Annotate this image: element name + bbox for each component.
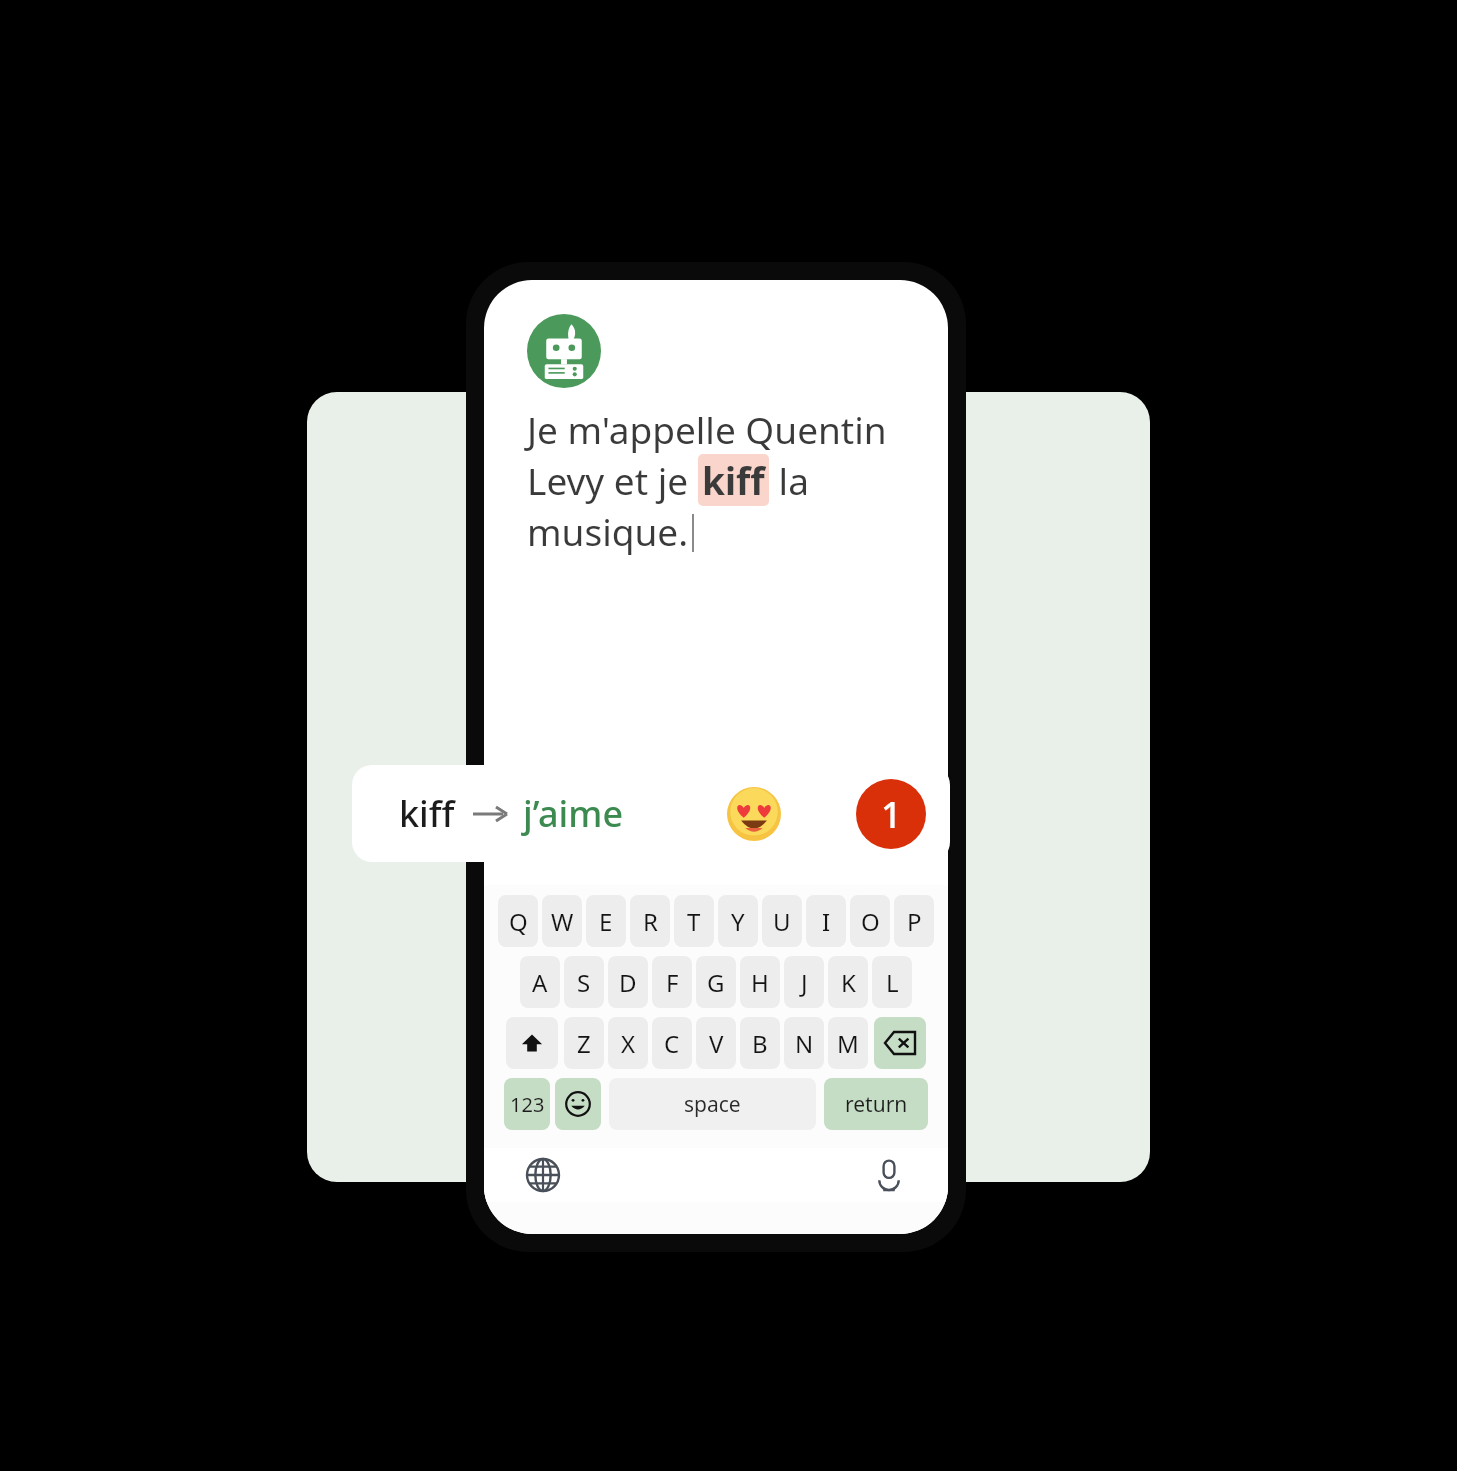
staticText: G bbox=[707, 966, 725, 999]
button[interactable]: M bbox=[828, 1017, 868, 1069]
button[interactable]: B bbox=[740, 1017, 780, 1069]
staticText: X bbox=[621, 1027, 636, 1060]
staticText: O bbox=[861, 905, 880, 938]
staticText: Z bbox=[577, 1027, 591, 1060]
button[interactable]: C bbox=[652, 1017, 692, 1069]
staticText: C bbox=[664, 1027, 680, 1060]
staticText: musique. bbox=[527, 506, 689, 556]
button[interactable]: I bbox=[806, 895, 846, 947]
staticText: W bbox=[551, 905, 574, 938]
button[interactable]: N bbox=[784, 1017, 824, 1069]
button[interactable]: L bbox=[872, 956, 912, 1008]
button[interactable]: Z bbox=[564, 1017, 604, 1069]
staticText: T bbox=[687, 905, 701, 938]
staticText: la bbox=[769, 455, 809, 505]
staticText: E bbox=[599, 905, 613, 938]
button[interactable]: U bbox=[762, 895, 802, 947]
button[interactable]: Q bbox=[498, 895, 538, 947]
button[interactable]: Backspace bbox=[874, 1017, 926, 1069]
button[interactable]: F bbox=[652, 956, 692, 1008]
staticText: U bbox=[773, 905, 791, 938]
staticText: L bbox=[886, 966, 899, 999]
staticText: I bbox=[822, 905, 831, 938]
button[interactable]: Change keyboard language bbox=[520, 1152, 566, 1198]
button[interactable]: G bbox=[696, 956, 736, 1008]
staticText: 123 bbox=[510, 1091, 545, 1118]
button[interactable]: 1 notification bbox=[832, 765, 950, 862]
button[interactable]: D bbox=[608, 956, 648, 1008]
staticText: P bbox=[907, 905, 922, 938]
staticText: R bbox=[643, 905, 658, 938]
button[interactable]: Emoji bbox=[555, 1078, 601, 1130]
staticText: S bbox=[577, 966, 591, 999]
button[interactable]: T bbox=[674, 895, 714, 947]
staticText: K bbox=[841, 966, 856, 999]
button[interactable]: E bbox=[586, 895, 626, 947]
button[interactable]: X bbox=[608, 1017, 648, 1069]
staticText: H bbox=[751, 966, 769, 999]
button[interactable]: R bbox=[630, 895, 670, 947]
button[interactable]: V bbox=[696, 1017, 736, 1069]
button[interactable]: W bbox=[542, 895, 582, 947]
staticText: Q bbox=[509, 905, 528, 938]
staticText: kiff bbox=[399, 789, 455, 838]
button[interactable]: A bbox=[520, 956, 560, 1008]
staticText: return bbox=[845, 1090, 908, 1119]
button[interactable]: 123 bbox=[504, 1078, 550, 1130]
staticText: j’aime bbox=[523, 789, 624, 838]
button[interactable]: Y bbox=[718, 895, 758, 947]
button[interactable]: J bbox=[784, 956, 824, 1008]
staticText: A bbox=[532, 966, 548, 999]
staticText: Je m'appelle Quentin bbox=[527, 404, 887, 454]
button[interactable]: Shift bbox=[506, 1017, 558, 1069]
staticText: F bbox=[666, 966, 679, 999]
button[interactable]: O bbox=[850, 895, 890, 947]
staticText: D bbox=[619, 966, 637, 999]
button[interactable]: space bbox=[609, 1078, 816, 1130]
staticText: kiff bbox=[702, 455, 765, 505]
button[interactable]: P bbox=[894, 895, 934, 947]
button[interactable]: Heart eyes emoji bbox=[699, 765, 808, 862]
staticText: space bbox=[684, 1090, 741, 1119]
staticText: M bbox=[837, 1027, 859, 1060]
staticText: N bbox=[795, 1027, 814, 1060]
button[interactable]: Voice input bbox=[866, 1152, 912, 1198]
button[interactable]: kiff bbox=[352, 765, 670, 862]
staticText: B bbox=[752, 1027, 768, 1060]
staticText: V bbox=[709, 1027, 724, 1060]
button[interactable]: H bbox=[740, 956, 780, 1008]
button[interactable]: S bbox=[564, 956, 604, 1008]
button[interactable]: K bbox=[828, 956, 868, 1008]
staticText: Levy et je bbox=[527, 455, 698, 505]
staticText: 1 bbox=[881, 790, 902, 839]
staticText: Y bbox=[731, 905, 745, 938]
button[interactable]: return bbox=[824, 1078, 928, 1130]
staticText: J bbox=[801, 966, 808, 999]
